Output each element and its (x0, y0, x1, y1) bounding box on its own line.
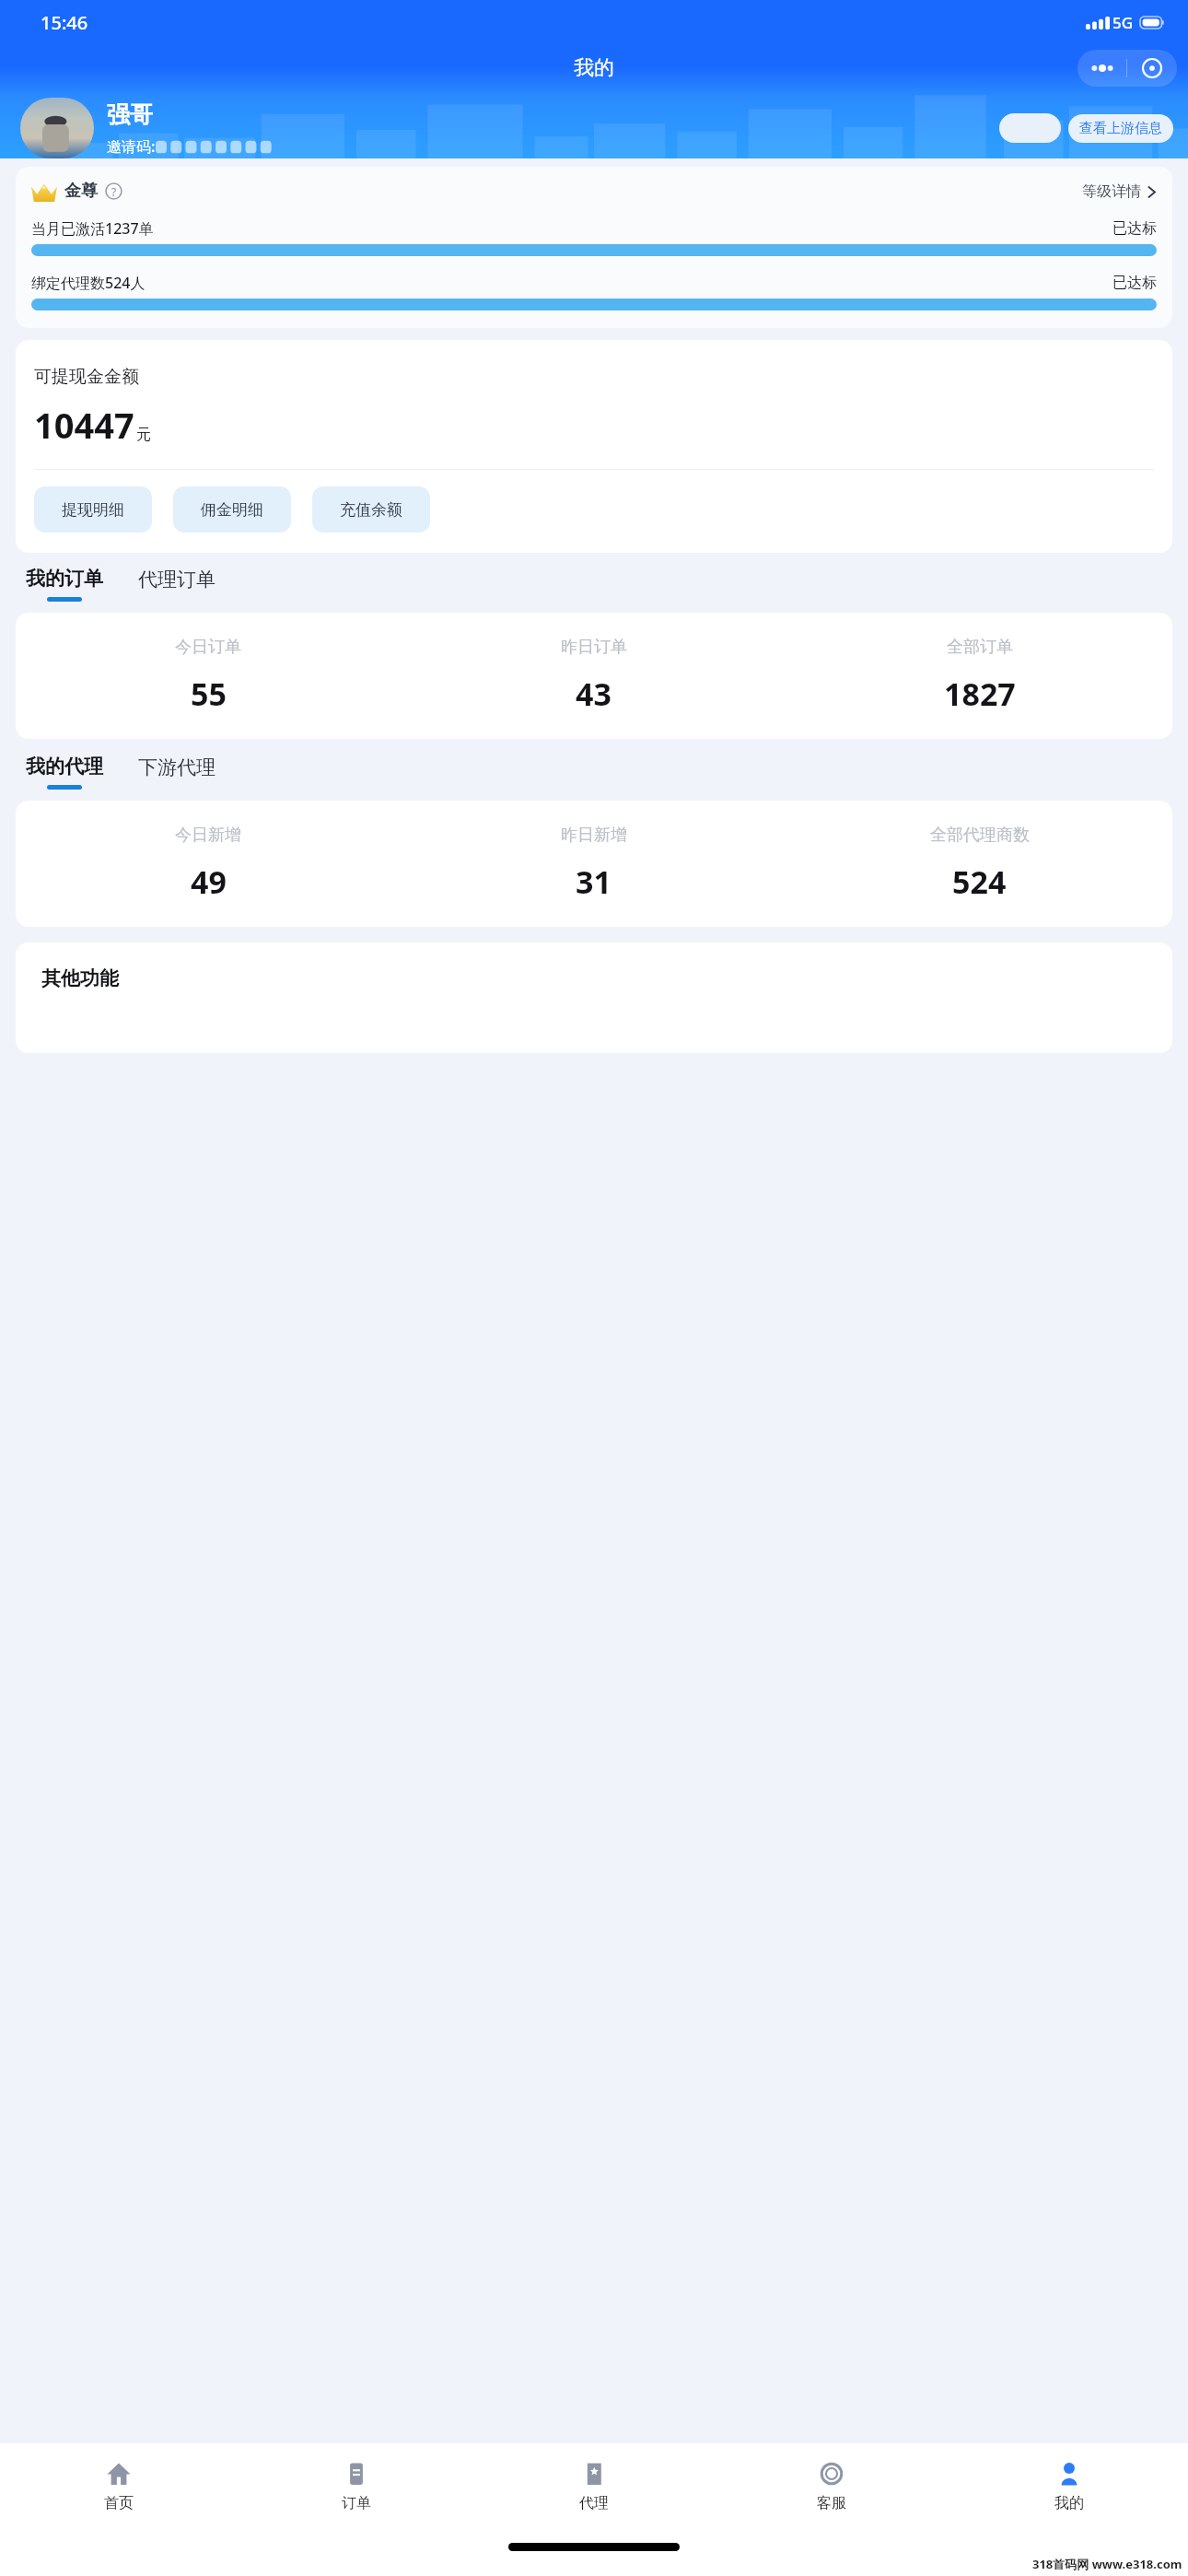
staticText: 金尊 (64, 181, 98, 202)
staticText: 我的 (1054, 2494, 1084, 2512)
button[interactable]: 金尊 (16, 167, 1172, 328)
staticText: 已达标 (1112, 219, 1157, 238)
staticText: 昨日新增 (561, 825, 627, 846)
staticText: 全部订单 (947, 637, 1013, 658)
staticText: 代理 (579, 2494, 609, 2512)
staticText: 代理订单 (138, 568, 215, 591)
staticText: 今日订单 (175, 637, 241, 658)
button[interactable]: Help (105, 182, 122, 200)
button[interactable]: 首页 (0, 2443, 238, 2528)
button[interactable]: Avatar (20, 98, 94, 158)
staticText: 我的代理 (26, 755, 103, 779)
staticText: 等级详情 (1082, 182, 1141, 201)
staticText: 昨日订单 (561, 637, 627, 658)
button[interactable]: 昨日订单 (401, 637, 786, 715)
button[interactable]: 全部订单 (786, 637, 1172, 715)
staticText: 可提现金金额 (34, 366, 139, 388)
button[interactable]: Close (1127, 50, 1177, 87)
button[interactable]: 我的 (950, 2443, 1188, 2528)
staticText: 5G (1112, 12, 1134, 33)
button[interactable]: 代理 (475, 2443, 713, 2528)
staticText: 我的 (574, 55, 614, 81)
staticText: 提现明细 (62, 500, 124, 520)
staticText: 49 (191, 861, 227, 903)
staticText: 客服 (817, 2494, 846, 2512)
button[interactable]: 等级详情 (1082, 182, 1157, 201)
button[interactable]: Loading (999, 113, 1061, 143)
button[interactable]: 全部代理商数 (786, 825, 1172, 903)
staticText: 查看上游信息 (1079, 120, 1162, 137)
staticText: 已达标 (1112, 274, 1157, 292)
button[interactable]: 我的代理 (26, 755, 103, 790)
staticText: 订单 (342, 2494, 371, 2512)
button[interactable]: 今日订单 (16, 637, 401, 715)
staticText: 10447 (34, 401, 134, 449)
button[interactable]: 今日新增 (16, 825, 401, 903)
staticText: 佣金明细 (201, 500, 263, 520)
staticText: 元 (136, 426, 151, 444)
button[interactable]: 查看上游信息 (1068, 114, 1173, 143)
button[interactable]: More (1077, 50, 1177, 87)
staticText: 524 (952, 861, 1007, 903)
staticText: 邀请码: (107, 136, 156, 157)
staticText: 强哥 (107, 100, 153, 129)
staticText: 下游代理 (138, 755, 215, 779)
staticText: 1827 (944, 673, 1016, 715)
button[interactable]: 佣金明细 (173, 486, 291, 533)
staticText: 15:46 (41, 10, 88, 35)
staticText: 43 (576, 673, 611, 715)
button[interactable]: 客服 (713, 2443, 950, 2528)
staticText: 我的订单 (26, 567, 103, 591)
button[interactable]: More (1077, 50, 1126, 87)
staticText: 今日新增 (175, 825, 241, 846)
button[interactable]: 订单 (238, 2443, 475, 2528)
button[interactable]: 代理订单 (138, 567, 215, 591)
staticText: ? (111, 184, 117, 199)
button[interactable]: 提现明细 (34, 486, 152, 533)
button[interactable]: 下游代理 (138, 755, 215, 779)
staticText: 首页 (104, 2494, 134, 2512)
staticText: 其他功能 (41, 966, 119, 990)
button[interactable]: 昨日新增 (401, 825, 786, 903)
staticText: 当月已激活1237单 (31, 218, 154, 239)
staticText: 充值余额 (340, 500, 402, 520)
staticText: 55 (191, 673, 227, 715)
button[interactable]: 充值余额 (312, 486, 430, 533)
staticText: 绑定代理数524人 (31, 273, 146, 293)
staticText: 全部代理商数 (930, 825, 1030, 846)
staticText: 31 (576, 861, 611, 903)
staticText: 318首码网 www.e318.com (1032, 2556, 1182, 2572)
button[interactable]: 我的订单 (26, 567, 103, 602)
